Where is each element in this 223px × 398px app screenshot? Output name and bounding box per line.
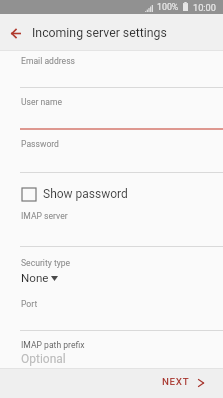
staticText: IMAP server xyxy=(21,211,68,221)
staticText: 10:00 xyxy=(193,2,216,13)
staticText: 100% xyxy=(157,2,179,12)
staticText: Security type xyxy=(21,258,71,268)
staticText: User name xyxy=(21,97,63,107)
staticText: None xyxy=(21,271,49,285)
staticText: Incoming server settings xyxy=(32,26,167,40)
staticText: Show password xyxy=(43,187,128,201)
button[interactable]: NEXT xyxy=(152,370,214,396)
staticText: Port xyxy=(21,299,38,309)
button[interactable]: Navigate up xyxy=(2,19,30,47)
staticText: Password xyxy=(21,139,59,149)
staticText: Optional xyxy=(21,352,66,366)
staticText: NEXT xyxy=(162,376,190,387)
button[interactable]: None xyxy=(0,267,223,289)
button[interactable]: Show password xyxy=(0,182,223,206)
staticText: Email address xyxy=(21,56,76,66)
staticText: IMAP path prefix xyxy=(21,340,85,350)
